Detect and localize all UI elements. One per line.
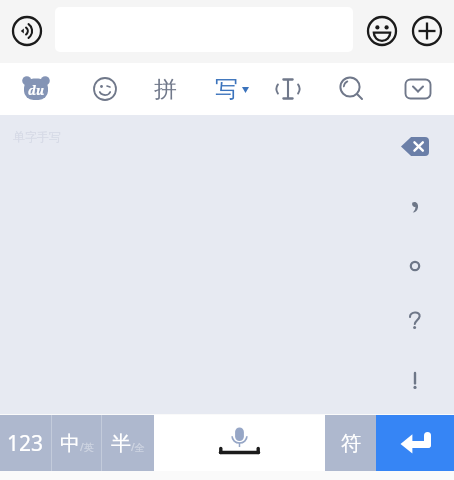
button[interactable] <box>154 415 325 471</box>
button[interactable] <box>395 247 435 285</box>
staticText: 单字手写 <box>13 129 61 144</box>
button[interactable]: Hide keyboard <box>400 71 436 107</box>
button[interactable]: 符 <box>325 415 376 471</box>
button[interactable]: Search <box>334 71 370 107</box>
button[interactable]: Move cursor <box>270 71 306 107</box>
button[interactable]: Backspace <box>395 131 435 162</box>
staticText: 123 <box>7 429 44 458</box>
button[interactable]: 123 <box>0 415 51 471</box>
button[interactable]: Voice input <box>9 13 44 48</box>
staticText: du <box>28 82 45 98</box>
button[interactable] <box>395 362 435 400</box>
staticText: 写 <box>215 75 238 104</box>
button[interactable]: 半 <box>102 415 154 471</box>
button[interactable]: Emoji <box>364 13 399 48</box>
staticText: /全 <box>131 440 145 454</box>
staticText: 半 <box>111 431 131 456</box>
button[interactable]: Enter <box>376 415 454 471</box>
staticText: 拼 <box>154 75 177 104</box>
button[interactable]: Add <box>409 13 444 48</box>
button[interactable]: Baidu menu <box>18 70 54 108</box>
staticText: 中 <box>60 431 80 456</box>
button[interactable]: 拼 <box>144 71 186 107</box>
staticText: /英 <box>80 440 94 454</box>
button[interactable]: 中 <box>52 415 101 471</box>
button[interactable]: Emoticons <box>87 71 123 107</box>
button[interactable] <box>395 188 435 226</box>
button[interactable]: 写 <box>208 71 256 107</box>
button[interactable] <box>395 302 435 340</box>
staticText: 符 <box>341 431 361 456</box>
